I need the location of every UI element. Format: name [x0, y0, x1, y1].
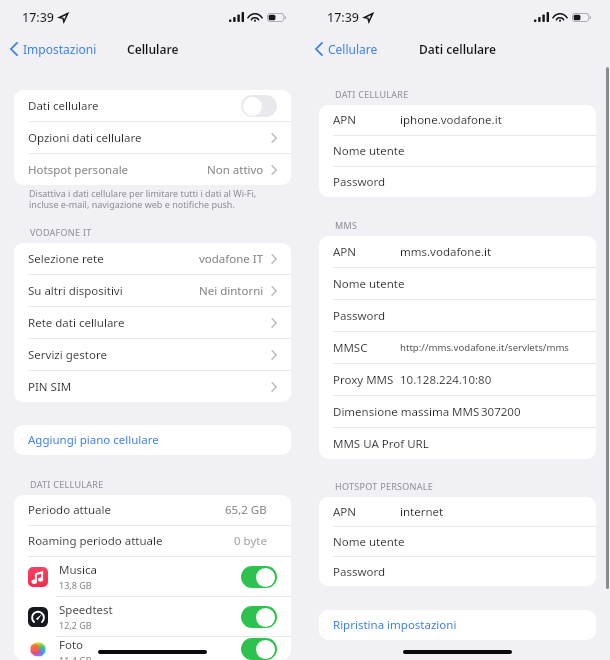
button[interactable]: Dati cellulare	[14, 90, 291, 121]
staticText: Opzioni dati cellulare	[28, 130, 142, 146]
staticText: MMS	[335, 219, 358, 231]
button[interactable]: Opzioni dati cellulare	[14, 122, 291, 153]
staticText: Cellulare	[328, 41, 378, 57]
button[interactable]: Periodo attuale	[14, 495, 291, 525]
staticText: Ripristina impostazioni	[333, 617, 457, 633]
staticText: Impostazioni	[23, 41, 97, 57]
button[interactable]: Password	[319, 300, 596, 331]
staticText: Password	[333, 308, 386, 324]
staticText: DATI CELLULARE	[335, 88, 409, 100]
button[interactable]: APN	[319, 105, 596, 135]
staticText: Selezione rete	[28, 251, 104, 267]
button[interactable]: Dimensione massima MMS	[319, 396, 596, 427]
staticText: HOTSPOT PERSONALE	[335, 480, 434, 492]
staticText: PIN SIM	[28, 379, 72, 395]
staticText: Cellulare	[127, 41, 179, 57]
staticText: APN	[333, 112, 357, 128]
staticText: 65,2 GB	[225, 502, 267, 518]
staticText: Servizi gestore	[28, 347, 107, 363]
staticText: 11,4 GB	[59, 654, 92, 660]
button[interactable]: Selezione rete	[14, 243, 291, 274]
staticText: Su altri dispositivi	[28, 283, 123, 299]
button[interactable]: APN	[319, 497, 596, 526]
staticText: APN	[333, 504, 357, 520]
staticText: Non attivo	[207, 162, 264, 178]
button[interactable]: Su altri dispositivi	[14, 275, 291, 306]
staticText: 307200	[481, 404, 521, 420]
button[interactable]: Roaming periodo attuale	[14, 526, 291, 556]
staticText: 17:39	[22, 9, 55, 26]
staticText: Nei dintorni	[199, 283, 264, 299]
button[interactable]: Nome utente	[319, 136, 596, 166]
staticText: Nome utente	[333, 534, 405, 550]
staticText: Nome utente	[333, 143, 405, 159]
button[interactable]: Attivo	[241, 606, 277, 628]
staticText: Roaming periodo attuale	[28, 533, 163, 549]
button[interactable]: APN	[319, 236, 596, 267]
staticText: Musica	[59, 562, 97, 578]
staticText: Foto	[59, 637, 84, 653]
button[interactable]: Rete dati cellulare	[14, 307, 291, 338]
staticText: Dimensione massima MMS	[333, 404, 480, 420]
staticText: vodafone IT	[199, 251, 264, 267]
staticText: DATI CELLULARE	[30, 478, 104, 490]
staticText: Periodo attuale	[28, 502, 111, 518]
staticText: 13,8 GB	[59, 579, 92, 591]
button[interactable]: Attivo	[241, 566, 277, 588]
staticText: VODAFONE IT	[30, 226, 92, 238]
button[interactable]: Servizi gestore	[14, 339, 291, 370]
staticText: APN	[333, 244, 357, 260]
button[interactable]: Attivo	[241, 638, 277, 660]
staticText: Disattiva i dati cellulare per limitare …	[29, 187, 257, 210]
staticText: Rete dati cellulare	[28, 315, 125, 331]
staticText: iphone.vodafone.it	[400, 112, 502, 128]
staticText: Password	[333, 174, 386, 190]
button[interactable]: Hotspot personale	[14, 154, 291, 185]
staticText: Aggiungi piano cellulare	[28, 432, 159, 448]
staticText: 0 byte	[234, 533, 267, 549]
staticText: Dati cellulare	[28, 98, 99, 114]
staticText: Speedtest	[59, 602, 113, 618]
staticText: 12,2 GB	[59, 619, 92, 631]
button[interactable]: MMS UA Prof URL	[319, 428, 596, 459]
button[interactable]: Foto	[14, 637, 291, 660]
button[interactable]: Cellulare	[305, 38, 384, 60]
button[interactable]: Non attivo	[241, 95, 277, 117]
button[interactable]: Ripristina impostazioni	[319, 610, 596, 640]
staticText: internet	[400, 504, 444, 520]
staticText: Proxy MMS	[333, 372, 394, 388]
staticText: Hotspot personale	[28, 162, 129, 178]
button[interactable]: Aggiungi piano cellulare	[14, 425, 291, 455]
button[interactable]: Nome utente	[319, 268, 596, 299]
button[interactable]: Password	[319, 557, 596, 586]
staticText: Nome utente	[333, 276, 405, 292]
staticText: 10.128.224.10:80	[400, 372, 492, 388]
staticText: MMS UA Prof URL	[333, 436, 429, 452]
button[interactable]: Proxy MMS	[319, 364, 596, 395]
button[interactable]: Nome utente	[319, 527, 596, 556]
button[interactable]: Speedtest	[14, 597, 291, 636]
staticText: mms.vodafone.it	[400, 244, 492, 260]
staticText: MMSC	[333, 340, 368, 356]
staticText: 17:39	[327, 9, 360, 26]
staticText: Dati cellulare	[419, 41, 497, 57]
button[interactable]: MMSC	[319, 332, 596, 363]
button[interactable]: PIN SIM	[14, 371, 291, 402]
button[interactable]: Password	[319, 167, 596, 197]
staticText: Password	[333, 564, 386, 580]
staticText: http://mms.vodafone.it/servlets/mms	[400, 341, 569, 354]
button[interactable]: Musica	[14, 557, 291, 596]
button[interactable]: Impostazioni	[0, 38, 103, 60]
